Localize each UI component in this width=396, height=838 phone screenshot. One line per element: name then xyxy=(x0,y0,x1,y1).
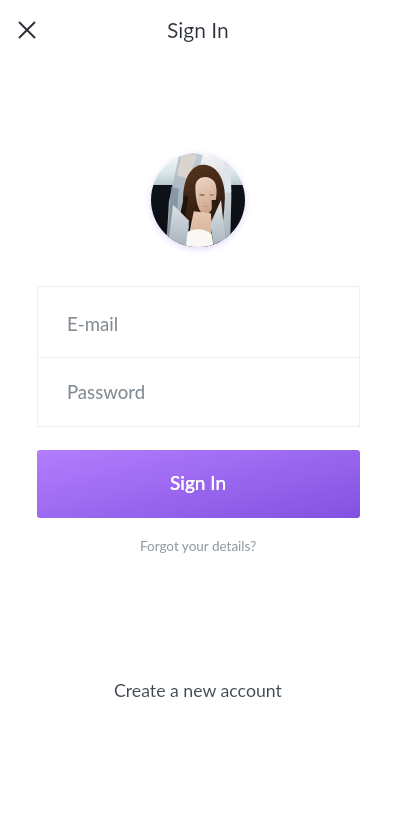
button[interactable]: Sign In xyxy=(37,450,360,518)
staticText: Password xyxy=(67,381,146,403)
staticText: Forgot your details? xyxy=(140,538,257,554)
staticText: Sign In xyxy=(170,471,227,494)
button[interactable]: Password xyxy=(37,358,360,426)
staticText: Sign In xyxy=(167,17,229,42)
button[interactable]: Forgot your details? xyxy=(140,538,257,554)
staticText: E-mail xyxy=(67,313,119,335)
staticText: Create a new account xyxy=(114,680,282,701)
button[interactable]: Create a new account xyxy=(114,680,282,701)
button[interactable]: E-mail xyxy=(37,287,360,357)
button[interactable]: Close xyxy=(5,7,49,51)
